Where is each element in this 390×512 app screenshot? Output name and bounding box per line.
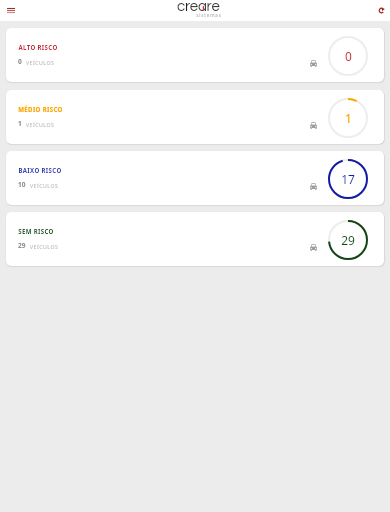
staticText: BAIXO RISCO bbox=[18, 166, 62, 174]
button[interactable]: SEM RISCO bbox=[6, 212, 384, 266]
staticText: sistemas bbox=[196, 12, 222, 18]
staticText: 1 bbox=[345, 110, 352, 126]
staticText: VEÍCULOS bbox=[26, 59, 55, 66]
staticText: creare bbox=[177, 0, 220, 14]
staticText: SEM RISCO bbox=[18, 227, 54, 235]
staticText: 10 bbox=[18, 180, 26, 189]
button[interactable]: MÉDIO RISCO bbox=[6, 90, 384, 144]
staticText: 0 bbox=[18, 57, 22, 66]
button[interactable]: Menu bbox=[0, 0, 21, 21]
staticText: VEÍCULOS bbox=[30, 182, 59, 189]
staticText: 0 bbox=[345, 48, 352, 64]
button[interactable]: BAIXO RISCO bbox=[6, 151, 384, 205]
staticText: MÉDIO RISCO bbox=[18, 105, 63, 113]
staticText: 29 bbox=[341, 232, 355, 248]
staticText: 29 bbox=[18, 241, 26, 250]
staticText: ALTO RISCO bbox=[18, 43, 58, 51]
staticText: 1 bbox=[18, 119, 22, 128]
staticText: VEÍCULOS bbox=[30, 243, 59, 250]
staticText: VEÍCULOS bbox=[26, 121, 55, 128]
button[interactable]: Refresh bbox=[371, 0, 390, 21]
staticText: 17 bbox=[341, 171, 355, 187]
button[interactable]: ALTO RISCO bbox=[6, 28, 384, 82]
